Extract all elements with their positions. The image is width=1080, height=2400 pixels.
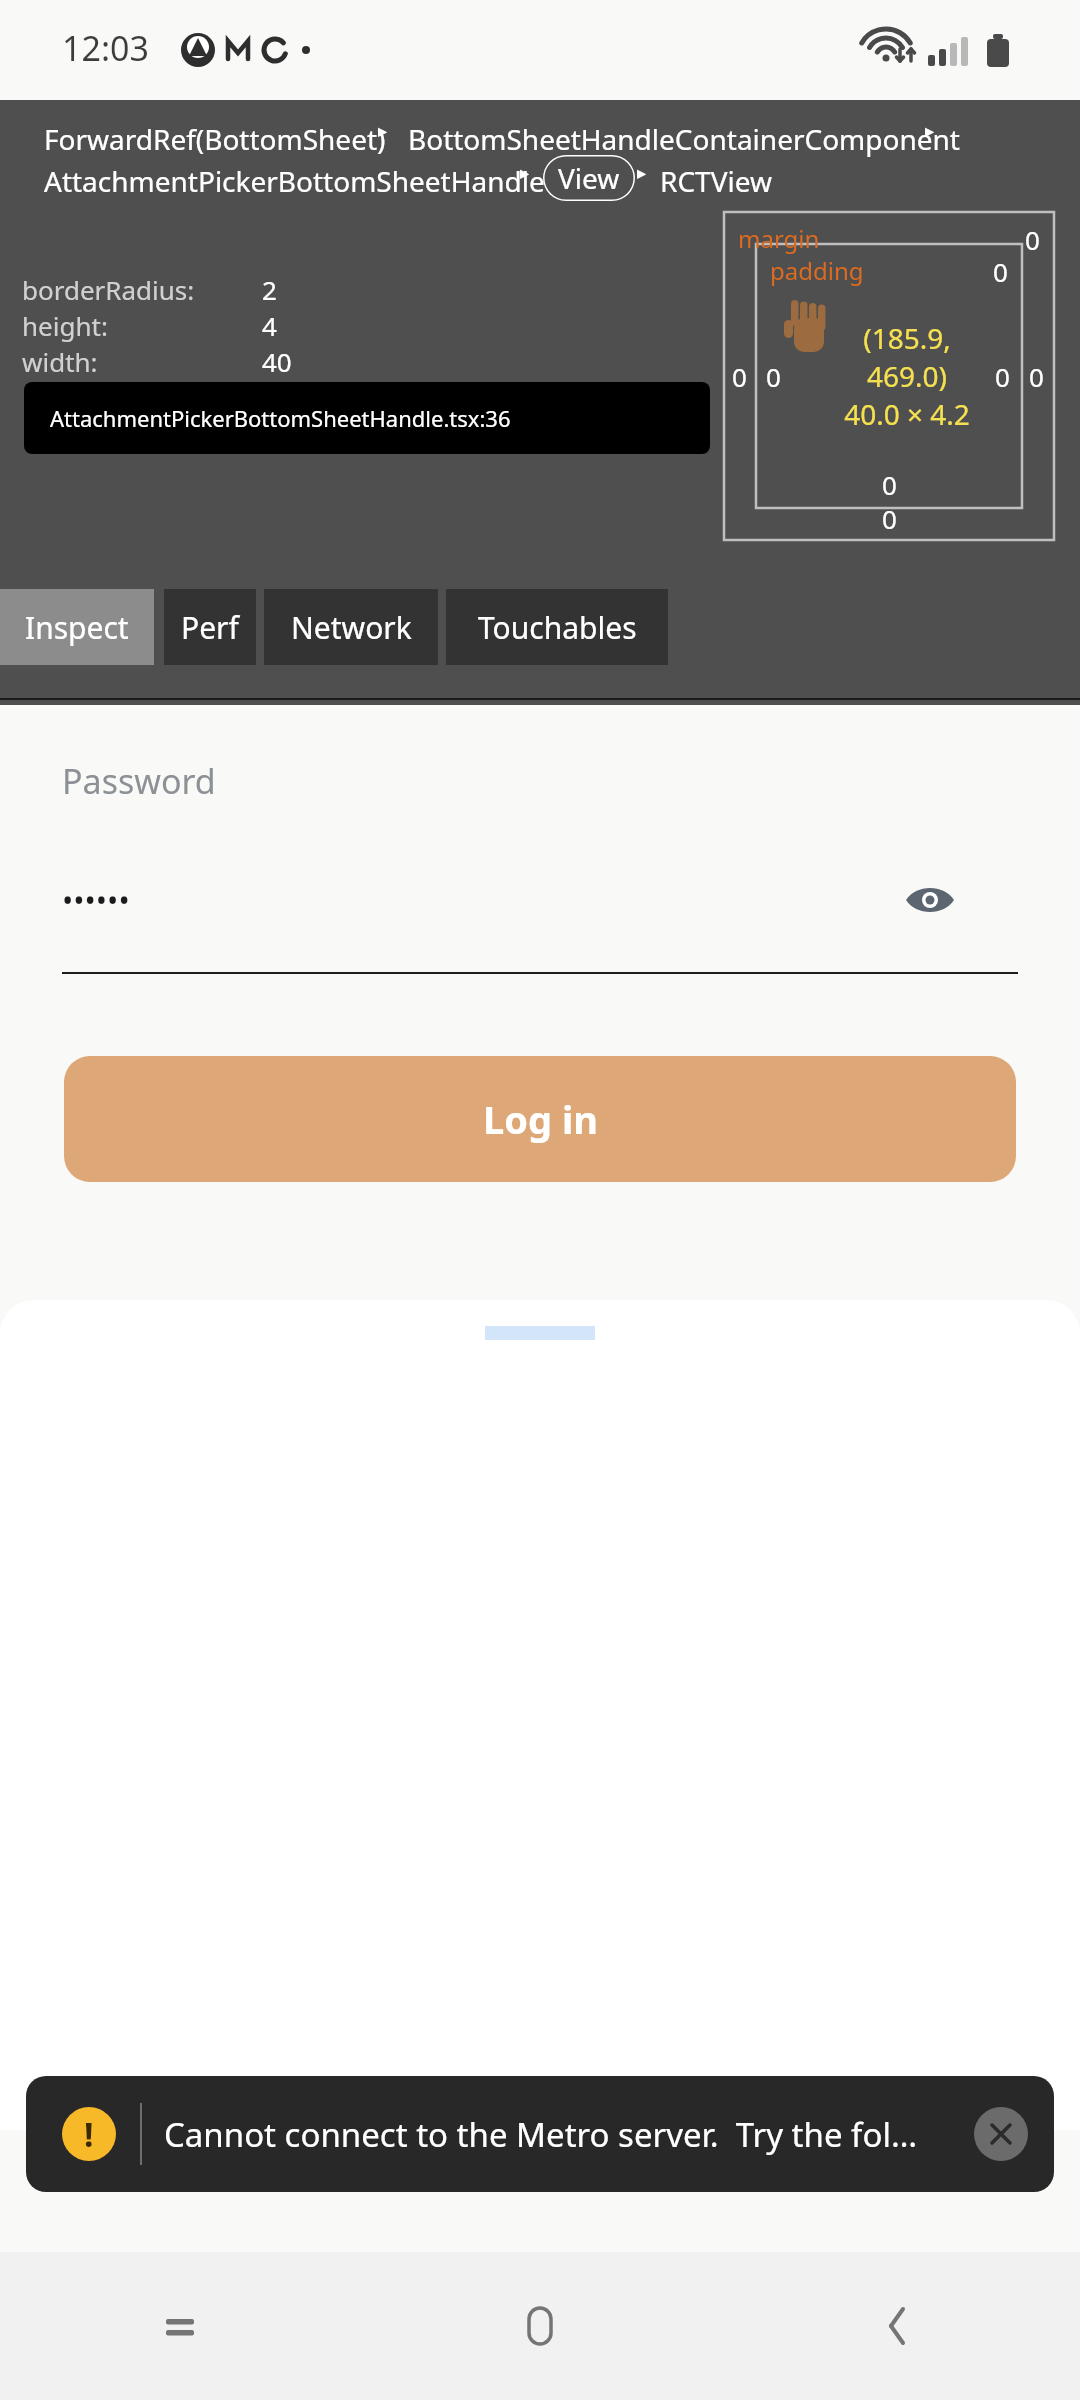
staticText: width: [22, 344, 98, 379]
staticText: AttachmentPickerBottomSheetHandle.tsx:36 [50, 403, 511, 433]
button[interactable]: Back [720, 2252, 1080, 2400]
staticText: (185.9, [863, 319, 951, 357]
staticText: •••••• [62, 880, 130, 921]
button[interactable]: AttachmentPickerBottomSheetHandle.tsx:36 [24, 382, 710, 454]
staticText: borderRadius: [22, 272, 195, 307]
staticText: 0 [1025, 222, 1040, 257]
staticText: ForwardRef(BottomSheet) [44, 120, 386, 158]
staticText: Cannot connect to the Metro server. Try … [164, 2112, 966, 2157]
staticText: 40.0 × 4.2 [844, 395, 970, 433]
staticText: Network [291, 607, 412, 648]
button[interactable]: Recents [0, 2252, 360, 2400]
staticText: View [558, 159, 620, 197]
staticText: backgroundColor: [22, 380, 242, 415]
staticText: RCTView [660, 162, 772, 200]
button[interactable]: Inspect [0, 589, 154, 665]
staticText: AttachmentPickerBottomSheetHandle [44, 162, 545, 200]
staticText: 4 [262, 308, 277, 343]
staticText: 0 [995, 359, 1010, 394]
staticText: ▸ [378, 120, 388, 141]
button[interactable]: Perf [164, 589, 256, 665]
button[interactable]: Log in [64, 1056, 1016, 1182]
button[interactable]: Dismiss [974, 2107, 1028, 2161]
staticText: 0 [882, 501, 897, 536]
staticText: 12:03 [62, 25, 149, 71]
staticText: 0 [882, 467, 897, 502]
button[interactable]: Home [360, 2252, 720, 2400]
staticText: 0 [766, 359, 781, 394]
staticText: margin [738, 222, 820, 255]
button[interactable]: Touchables [446, 589, 668, 665]
staticText: Touchables [478, 607, 637, 648]
staticText: 40 [262, 344, 292, 379]
staticText: 2 [262, 272, 277, 307]
staticText: Password [62, 758, 216, 804]
staticText: 469.0) [867, 357, 947, 395]
staticText: ! [84, 2111, 94, 2157]
staticText: height: [22, 308, 108, 343]
button[interactable]: View [543, 155, 635, 201]
staticText: Log in [483, 1093, 598, 1145]
button[interactable]: Network [264, 589, 438, 665]
button[interactable]: Back [50, 130, 110, 190]
staticText: BottomSheetHandleContainerComponent [408, 120, 960, 158]
staticText: ▸ [637, 162, 647, 183]
staticText: 0 [732, 359, 747, 394]
staticText: ▸ [520, 162, 530, 183]
staticText: 0 [1029, 359, 1044, 394]
staticText: padding [770, 254, 864, 287]
staticText: Log in to your account [62, 282, 620, 350]
staticText: 0 [993, 254, 1008, 289]
staticText: #0000001A [262, 380, 400, 415]
staticText: Inspect [25, 607, 129, 648]
staticText: rajkapoordev@gmail.com [62, 578, 471, 624]
staticText: Perf [181, 607, 239, 648]
button[interactable]: Show password [900, 870, 960, 930]
staticText: ▸ [925, 120, 935, 141]
